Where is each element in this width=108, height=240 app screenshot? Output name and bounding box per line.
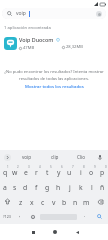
staticText: 0	[105, 165, 107, 169]
button[interactable]: t	[42, 164, 53, 179]
staticText: 3	[28, 165, 30, 169]
staticText: c	[41, 198, 45, 207]
staticText: p	[100, 168, 105, 177]
staticText: f	[35, 183, 38, 192]
button[interactable]: n	[70, 194, 81, 209]
staticText: d	[23, 183, 28, 192]
staticText: b	[62, 198, 67, 207]
staticText: n	[73, 198, 78, 207]
staticText: ¿No pudo encontrar los resultados? Inten…	[4, 69, 104, 81]
button[interactable]: More suggestions	[1, 151, 13, 163]
staticText: g	[45, 183, 50, 192]
staticText: 4	[39, 165, 41, 169]
button[interactable]: Search	[91, 209, 108, 224]
staticText: ?123	[3, 214, 11, 219]
staticText: voip	[16, 10, 26, 17]
staticText: q	[3, 168, 8, 177]
button[interactable]: p	[97, 164, 108, 179]
button[interactable]: Voip Duocom	[0, 34, 108, 53]
staticText: z	[19, 198, 23, 207]
staticText: m	[83, 198, 90, 207]
staticText: w	[12, 168, 18, 177]
staticText: ,	[19, 212, 21, 219]
button[interactable]: u	[64, 164, 75, 179]
button[interactable]: .	[78, 209, 91, 224]
button[interactable]: q	[0, 164, 10, 179]
button[interactable]: Emoji	[26, 209, 39, 224]
staticText: j	[69, 183, 71, 192]
staticText: ñ	[100, 183, 105, 192]
button[interactable]: k	[75, 179, 86, 194]
staticText: v	[52, 198, 56, 207]
staticText: k	[79, 183, 83, 192]
button[interactable]: z	[15, 194, 26, 209]
staticText: o	[89, 168, 94, 177]
button[interactable]: e	[20, 164, 31, 179]
button[interactable]: m	[81, 194, 92, 209]
button[interactable]: ñ	[97, 179, 108, 194]
button[interactable]: voip	[2, 8, 106, 19]
staticText: 9	[94, 165, 96, 169]
button[interactable]: s	[10, 179, 20, 194]
button[interactable]: voip	[13, 150, 41, 164]
button[interactable]: v	[48, 194, 59, 209]
button[interactable]: Home	[42, 224, 67, 240]
button[interactable]: Clio	[68, 150, 95, 164]
staticText: .	[84, 212, 86, 219]
staticText: Voip Duocom	[19, 36, 54, 43]
staticText: 8	[83, 165, 85, 169]
button[interactable]: c	[37, 194, 48, 209]
button[interactable]: Account	[96, 11, 102, 17]
staticText: h	[56, 183, 61, 192]
button[interactable]: a	[0, 179, 10, 194]
button[interactable]: ,	[13, 209, 26, 224]
button[interactable]: Voice input	[94, 151, 106, 163]
staticText: e	[24, 168, 28, 177]
button[interactable]: j	[64, 179, 75, 194]
button[interactable]: x	[26, 194, 37, 209]
button[interactable]: Mostrar todos los resultados	[25, 83, 84, 89]
button[interactable]: o	[86, 164, 97, 179]
button[interactable]: d	[20, 179, 31, 194]
button[interactable]: b	[59, 194, 70, 209]
staticText: 1 aplicación encontrada	[4, 25, 51, 31]
staticText: 5	[50, 165, 52, 169]
button[interactable]: f	[31, 179, 42, 194]
button[interactable]: y	[53, 164, 64, 179]
staticText: s	[13, 183, 17, 192]
staticText: 28,32MB	[66, 44, 83, 50]
button[interactable]: Space	[39, 209, 78, 224]
staticText: a	[3, 183, 7, 192]
button[interactable]: Shift	[0, 194, 15, 209]
button[interactable]: Backspace	[92, 194, 108, 209]
staticText: 6	[61, 165, 63, 169]
button[interactable]: ?123	[0, 209, 13, 224]
button[interactable]: Recents	[17, 224, 42, 240]
staticText: r	[35, 168, 38, 177]
staticText: t	[46, 168, 49, 177]
staticText: i	[80, 168, 82, 177]
staticText: l	[91, 183, 93, 192]
staticText: Mostrar todos los resultados	[25, 83, 84, 89]
staticText: x	[30, 198, 34, 207]
button[interactable]: Back	[67, 224, 92, 240]
staticText: y	[57, 168, 61, 177]
staticText: 1	[7, 165, 9, 169]
button[interactable]: h	[53, 179, 64, 194]
button[interactable]: r	[31, 164, 42, 179]
staticText: clip	[51, 154, 59, 160]
button[interactable]: w	[10, 164, 20, 179]
staticText: voip	[22, 154, 32, 160]
button[interactable]: g	[42, 179, 53, 194]
staticText: u	[67, 168, 72, 177]
staticText: 7	[72, 165, 74, 169]
button[interactable]: i	[75, 164, 86, 179]
button[interactable]: l	[86, 179, 97, 194]
staticText: 47MB	[23, 45, 35, 51]
staticText: Clio	[77, 154, 86, 160]
button[interactable]: clip	[41, 150, 68, 164]
staticText: 2	[17, 165, 19, 169]
